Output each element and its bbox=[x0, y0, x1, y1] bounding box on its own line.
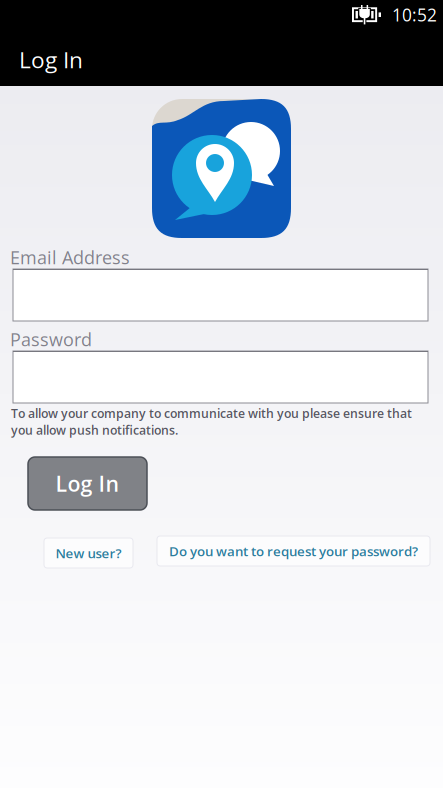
staticText: 10:52 bbox=[392, 3, 437, 27]
staticText: Log In bbox=[19, 44, 83, 75]
staticText: Do you want to request your password? bbox=[169, 542, 418, 560]
button[interactable]: Log In bbox=[28, 457, 147, 510]
staticText: Password bbox=[10, 327, 92, 351]
staticText: To allow your company to communicate wit… bbox=[11, 405, 412, 438]
button[interactable]: Do you want to request your password? bbox=[157, 536, 430, 566]
staticText: New user? bbox=[55, 544, 121, 562]
button[interactable]: New user? bbox=[44, 538, 133, 568]
staticText: Email Address bbox=[10, 245, 130, 269]
staticText: Log In bbox=[55, 469, 119, 498]
